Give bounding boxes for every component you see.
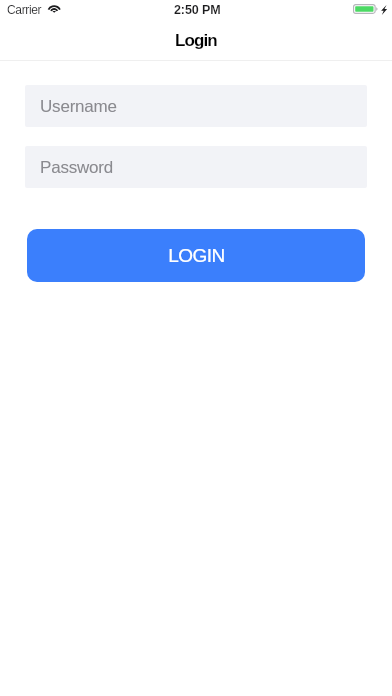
staticText: Username bbox=[40, 97, 117, 116]
staticText: 2:50 PM bbox=[174, 3, 221, 17]
other: Battery bbox=[353, 4, 378, 14]
button[interactable]: Username bbox=[25, 85, 367, 127]
staticText: Login bbox=[175, 31, 217, 50]
button[interactable]: Password bbox=[25, 146, 367, 188]
other: Charging bbox=[381, 5, 387, 15]
staticText: Carrier bbox=[7, 3, 42, 16]
button[interactable]: LOGIN bbox=[27, 229, 365, 282]
other: Wi-Fi bbox=[47, 1, 61, 11]
staticText: Password bbox=[40, 158, 114, 177]
staticText: LOGIN bbox=[168, 245, 225, 266]
